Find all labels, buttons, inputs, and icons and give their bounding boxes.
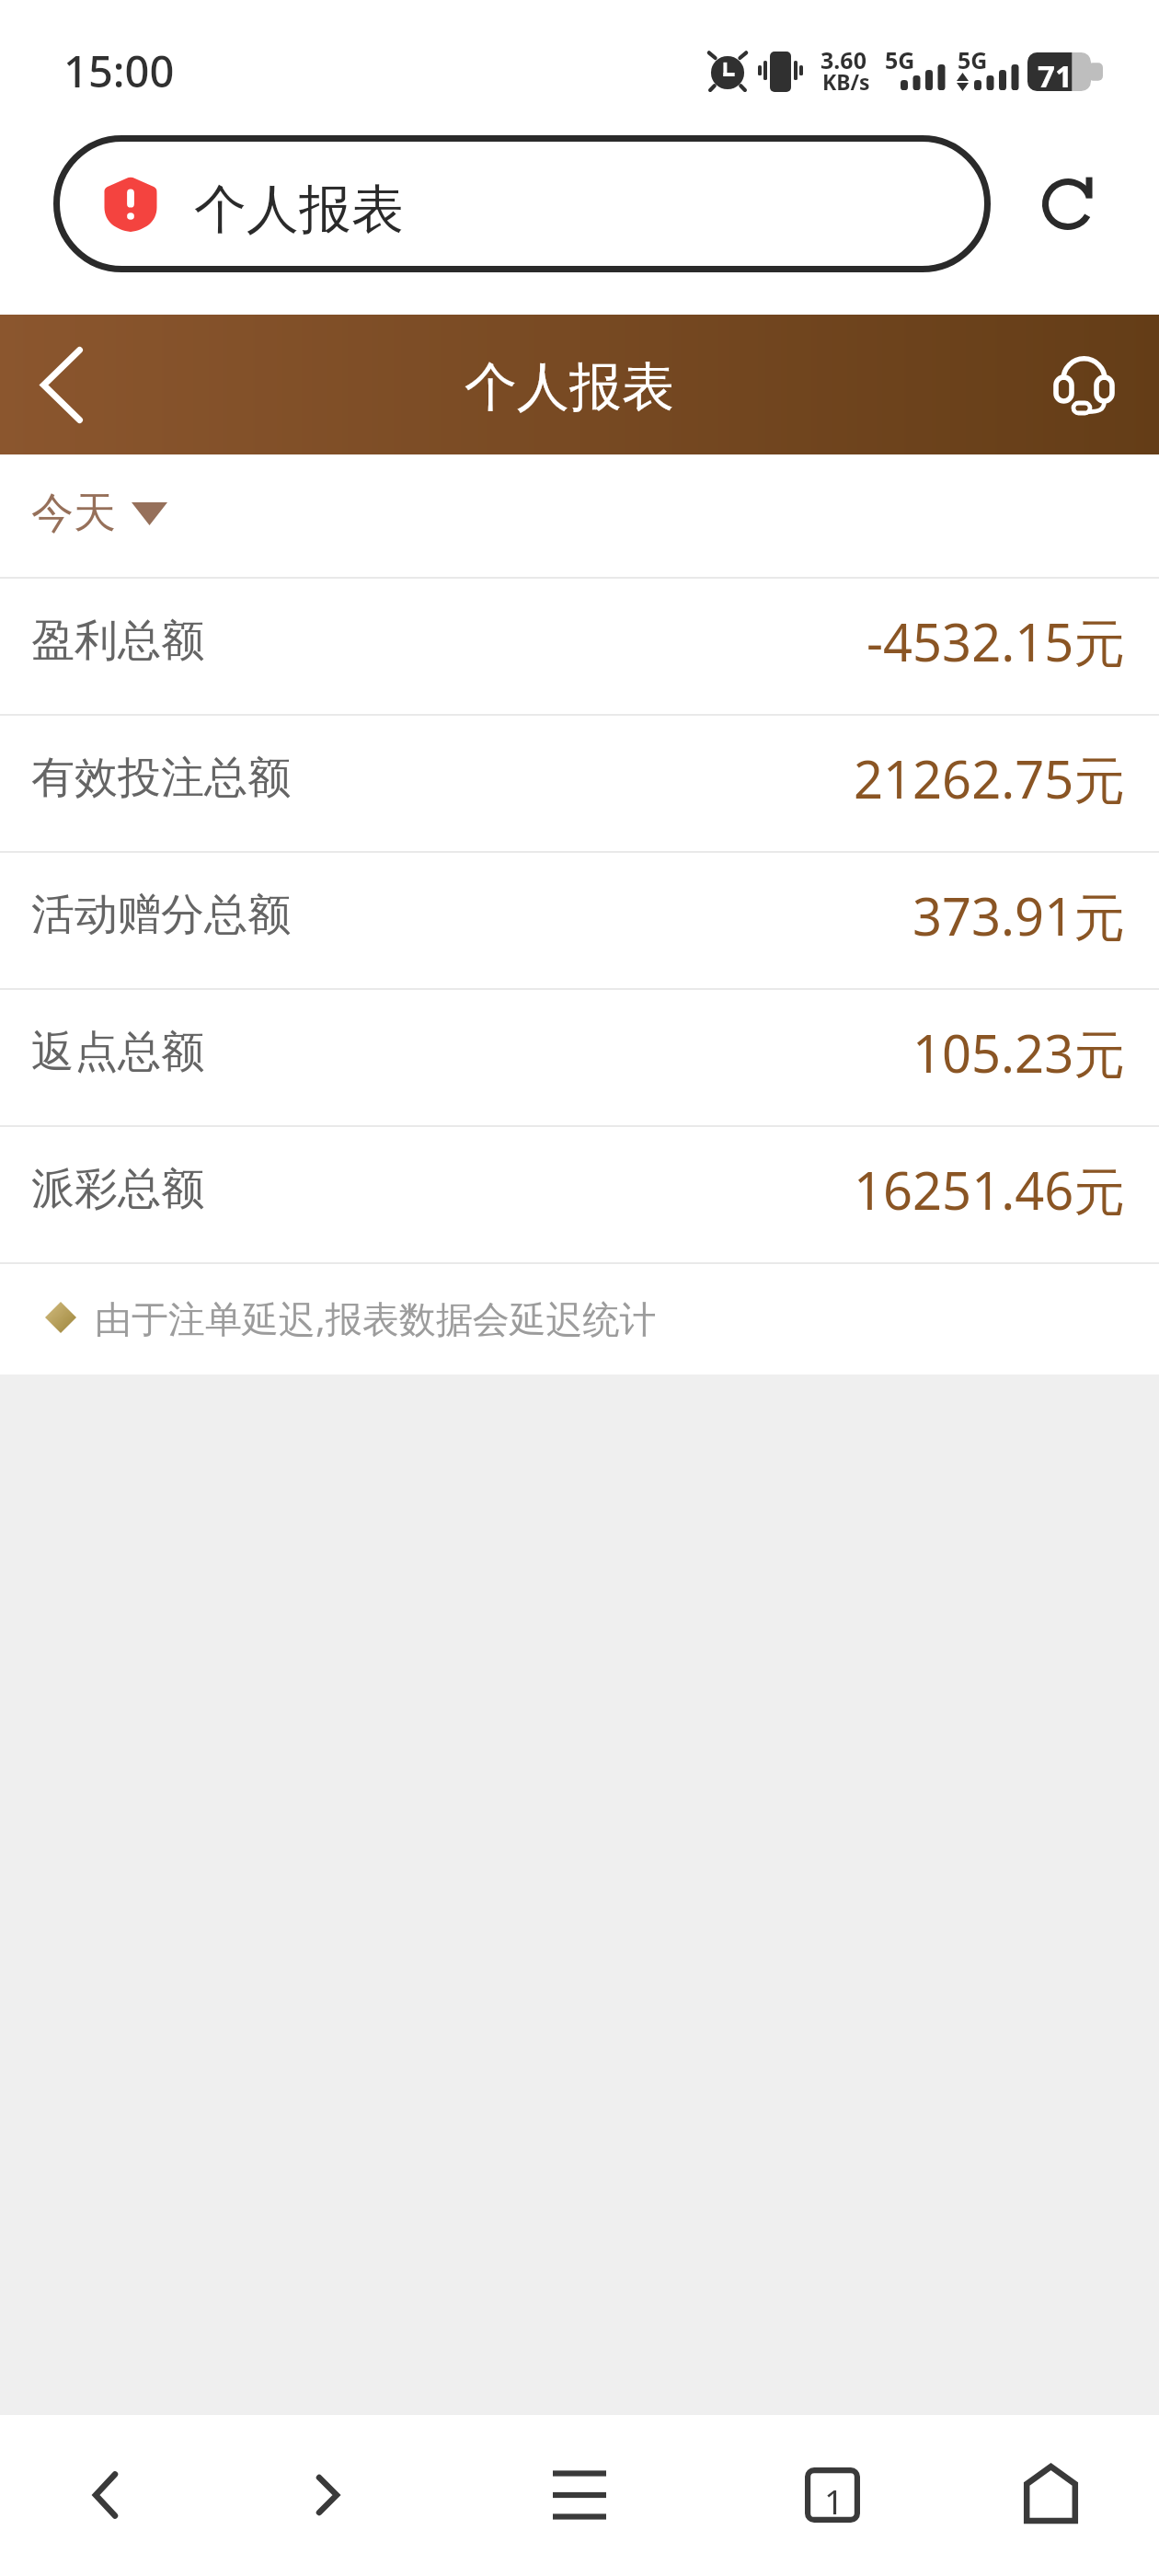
- staticText: 3.60: [820, 44, 866, 75]
- staticText: 16251.46元: [854, 1155, 1126, 1225]
- staticText: 21262.75元: [854, 743, 1126, 813]
- button[interactable]: 派彩总额: [0, 1127, 1159, 1262]
- button[interactable]: Back: [0, 315, 122, 454]
- staticText: 由于注单延迟,报表数据会延迟统计: [95, 1293, 657, 1343]
- button[interactable]: Home: [936, 2415, 1159, 2576]
- button[interactable]: Menu: [436, 2415, 686, 2576]
- button[interactable]: 今天: [0, 454, 195, 577]
- staticText: 1: [824, 2478, 844, 2524]
- staticText: 5G: [885, 44, 915, 75]
- staticText: 个人报表: [194, 177, 404, 243]
- staticText: 71: [1038, 55, 1073, 97]
- staticText: 活动赠分总额: [31, 888, 291, 942]
- staticText: 有效投注总额: [31, 751, 291, 805]
- staticText: 个人报表: [465, 354, 674, 420]
- staticText: 373.91元: [912, 880, 1126, 950]
- button[interactable]: Customer service: [1008, 315, 1159, 454]
- button[interactable]: 返点总额: [0, 990, 1159, 1125]
- staticText: 盈利总额: [31, 614, 204, 668]
- staticText: -4532.15元: [866, 606, 1126, 676]
- button[interactable]: Back: [0, 2415, 215, 2576]
- staticText: 派彩总额: [31, 1162, 204, 1216]
- button[interactable]: Forward: [215, 2415, 436, 2576]
- staticText: 今天: [31, 487, 116, 540]
- staticText: 15:00: [63, 41, 175, 100]
- button[interactable]: Refresh: [977, 136, 1159, 272]
- staticText: 5G: [958, 44, 988, 75]
- staticText: 105.23元: [912, 1018, 1126, 1087]
- button[interactable]: Tabs: [686, 2415, 936, 2576]
- staticText: KB/s: [822, 67, 870, 96]
- staticText: 返点总额: [31, 1025, 204, 1079]
- button[interactable]: 有效投注总额: [0, 716, 1159, 851]
- button[interactable]: 盈利总额: [0, 579, 1159, 714]
- button[interactable]: 个人报表: [53, 136, 991, 272]
- button[interactable]: 活动赠分总额: [0, 853, 1159, 988]
